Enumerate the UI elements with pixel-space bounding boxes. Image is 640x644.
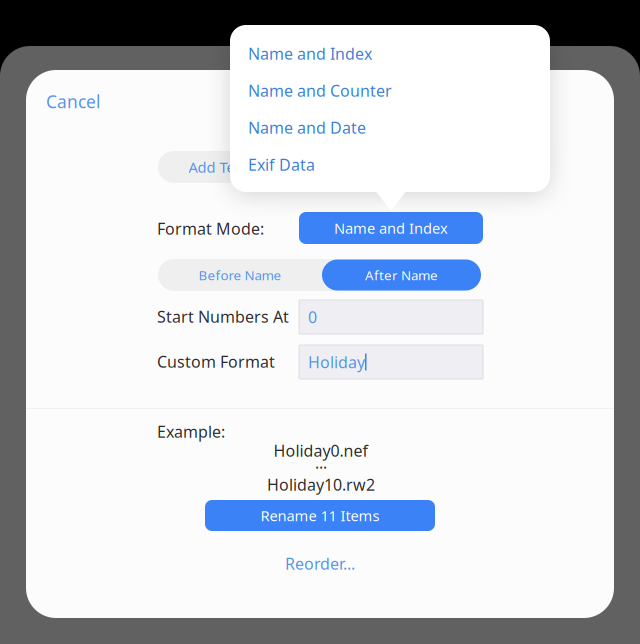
button[interactable]: Name and Date — [230, 109, 550, 146]
staticText: ... — [315, 452, 327, 473]
staticText: Cancel — [46, 90, 100, 113]
staticText: Before Name — [198, 266, 281, 284]
button[interactable]: Before Name — [158, 259, 322, 291]
button[interactable]: Name and Index — [230, 35, 550, 72]
staticText: Name and Index — [334, 218, 448, 238]
button[interactable]: Cancel — [46, 90, 100, 113]
button[interactable]: Exif Data — [230, 146, 550, 183]
staticText: Add Text... — [188, 157, 259, 177]
staticText: Name and Date — [248, 117, 366, 138]
staticText: Custom Format — [157, 351, 275, 372]
button[interactable]: Rename 11 Items — [205, 500, 435, 531]
staticText: Format Mode: — [157, 218, 264, 239]
staticText: Exif Data — [248, 154, 315, 175]
button[interactable]: Add Text... — [158, 151, 290, 183]
staticText: Name and Index — [248, 43, 372, 64]
staticText: Start Numbers At — [157, 306, 289, 327]
button[interactable]: After Name — [322, 259, 481, 291]
staticText: Holiday — [308, 351, 365, 373]
button[interactable]: Name and Index — [299, 212, 483, 244]
staticText: Name and Counter — [248, 80, 392, 101]
staticText: After Name — [365, 266, 438, 284]
staticText: Example: — [157, 421, 225, 442]
staticText: Holiday0.nef — [273, 440, 368, 461]
staticText: Holiday10.rw2 — [267, 474, 375, 495]
staticText: 0 — [308, 306, 317, 328]
staticText: Rename 11 Items — [260, 506, 379, 525]
staticText: Reorder... — [285, 553, 355, 574]
button[interactable]: Name and Counter — [230, 72, 550, 109]
button[interactable]: Reorder... — [26, 553, 614, 574]
